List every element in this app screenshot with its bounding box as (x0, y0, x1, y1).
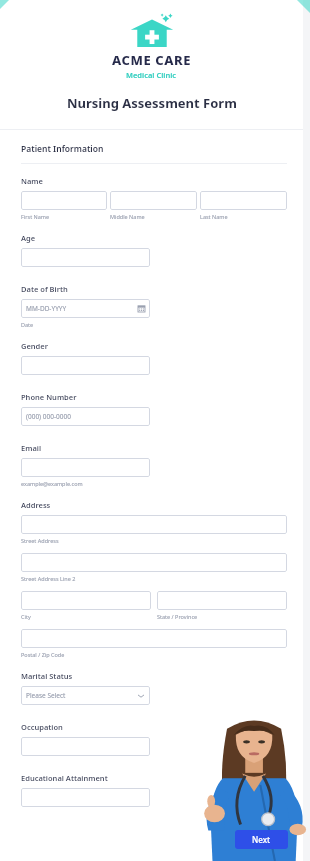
staticText: Name (21, 176, 43, 186)
button[interactable] (157, 591, 287, 610)
button[interactable] (21, 591, 151, 610)
staticText: Patient Information (21, 143, 104, 155)
button[interactable] (21, 191, 107, 210)
button[interactable] (21, 248, 150, 267)
staticText: Educational Attainment (21, 773, 108, 783)
staticText: Street Address (21, 537, 59, 544)
staticText: Phone Number (21, 392, 77, 402)
staticText: (000) 000-0000 (26, 412, 71, 421)
staticText: Middle Name (110, 213, 145, 220)
button[interactable] (21, 629, 287, 648)
staticText: Occupation (21, 722, 63, 732)
staticText: Date (21, 321, 34, 328)
button[interactable]: (000) 000-0000 (21, 407, 150, 426)
button[interactable] (21, 553, 287, 572)
button[interactable] (21, 737, 150, 756)
staticText: example@example.com (21, 480, 83, 487)
staticText: Date of Birth (21, 284, 68, 294)
staticText: Postal / Zip Code (21, 651, 65, 658)
button[interactable] (110, 191, 197, 210)
button[interactable]: Next (235, 830, 288, 849)
staticText: Gender (21, 341, 48, 351)
button[interactable] (21, 458, 150, 477)
staticText: Last Name (200, 213, 228, 220)
button[interactable] (21, 515, 287, 534)
staticText: Medical Clinic (126, 70, 177, 80)
button[interactable] (21, 788, 150, 807)
staticText: City (21, 613, 31, 620)
staticText: Please Select (26, 691, 66, 700)
staticText: State / Province (157, 613, 198, 620)
staticText: Next (252, 834, 271, 845)
staticText: Address (21, 500, 51, 510)
staticText: MM-DD-YYYY (26, 304, 67, 313)
staticText: Email (21, 443, 42, 453)
staticText: Nursing Assessment Form (67, 94, 237, 112)
button[interactable] (200, 191, 287, 210)
button[interactable] (21, 356, 150, 375)
staticText: Marital Status (21, 671, 73, 681)
button[interactable]: MM-DD-YYYY (21, 299, 150, 318)
staticText: First Name (21, 213, 50, 220)
button[interactable]: Please Select (21, 686, 150, 705)
staticText: Age (21, 233, 36, 243)
staticText: ACME CARE (112, 51, 192, 69)
staticText: Street Address Line 2 (21, 575, 76, 582)
